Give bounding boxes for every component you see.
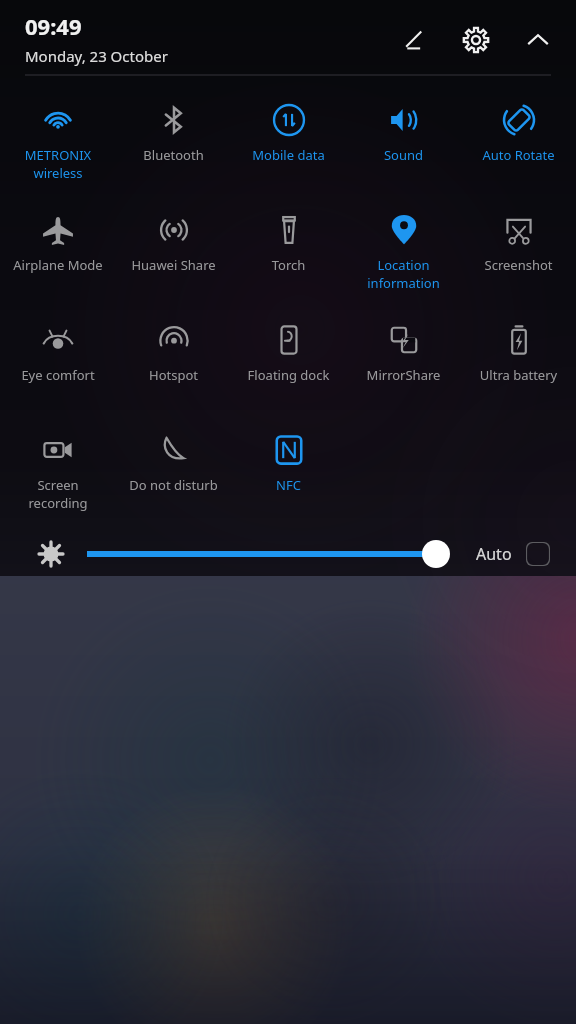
staticText: METRONIX wireless (2, 146, 114, 182)
staticText: 09:49 (25, 11, 82, 41)
button[interactable]: Huawei Share (116, 207, 231, 317)
staticText: Ultra battery (463, 366, 574, 384)
button[interactable]: MirrorShare (346, 317, 461, 427)
button[interactable]: Screenshot (461, 207, 576, 317)
staticText: Screenshot (463, 256, 574, 274)
staticText: Auto Rotate (463, 146, 574, 164)
staticText: Bluetooth (118, 146, 229, 164)
staticText: Airplane Mode (2, 256, 114, 274)
button[interactable]: Brightness (34, 537, 68, 571)
button[interactable]: Sound (346, 97, 461, 207)
button[interactable]: Bluetooth (116, 97, 231, 207)
button[interactable]: Airplane Mode (0, 207, 116, 317)
staticText: Location information (348, 256, 459, 292)
staticText: Screen recording (2, 476, 114, 512)
staticText: Floating dock (233, 366, 344, 384)
staticText: MirrorShare (348, 366, 459, 384)
button[interactable]: Do not disturb (116, 427, 231, 531)
button[interactable]: Collapse (518, 20, 558, 60)
staticText: Sound (348, 146, 459, 164)
staticText: Torch (233, 256, 344, 274)
staticText: Auto (476, 543, 512, 565)
button[interactable]: Mobile data (231, 97, 346, 207)
staticText: NFC (233, 476, 344, 494)
button[interactable]: Settings (456, 20, 496, 60)
button[interactable]: METRONIX wireless (0, 97, 116, 207)
staticText: Monday, 23 October (25, 46, 168, 66)
button[interactable]: Auto Rotate (461, 97, 576, 207)
button[interactable]: Eye comfort (0, 317, 116, 427)
staticText: Hotspot (118, 366, 229, 384)
button[interactable]: Screen recording (0, 427, 116, 531)
button[interactable]: Location information (346, 207, 461, 317)
button[interactable]: Auto (472, 536, 554, 572)
staticText: Mobile data (233, 146, 344, 164)
button[interactable]: Hotspot (116, 317, 231, 427)
staticText: Huawei Share (118, 256, 229, 274)
button[interactable]: Edit (394, 20, 434, 60)
staticText: Do not disturb (118, 476, 229, 494)
button[interactable]: NFC (231, 427, 346, 531)
staticText: Eye comfort (2, 366, 114, 384)
button[interactable]: Brightness slider (87, 536, 452, 572)
button[interactable]: Ultra battery (461, 317, 576, 427)
button[interactable]: Floating dock (231, 317, 346, 427)
button[interactable]: Torch (231, 207, 346, 317)
